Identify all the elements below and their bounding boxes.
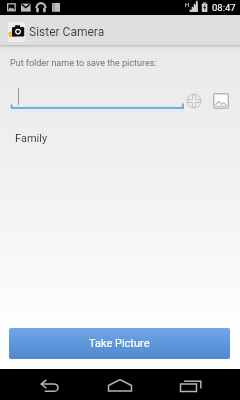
staticText: H <box>185 1 190 8</box>
staticText: Take Picture <box>89 337 150 350</box>
button[interactable]: Recent apps <box>176 373 208 397</box>
button[interactable]: Home <box>104 373 136 397</box>
staticText: Sister Camera <box>29 25 105 39</box>
button[interactable]: Pick from gallery <box>211 91 230 110</box>
button[interactable] <box>10 84 184 110</box>
button[interactable]: New folder <box>184 91 203 110</box>
staticText: Put folder name to save the pictures: <box>10 58 157 69</box>
staticText: 08:47 <box>212 2 236 13</box>
button[interactable]: Take Picture <box>9 328 230 359</box>
staticText: Family <box>15 132 48 145</box>
button[interactable]: Back <box>34 373 66 397</box>
